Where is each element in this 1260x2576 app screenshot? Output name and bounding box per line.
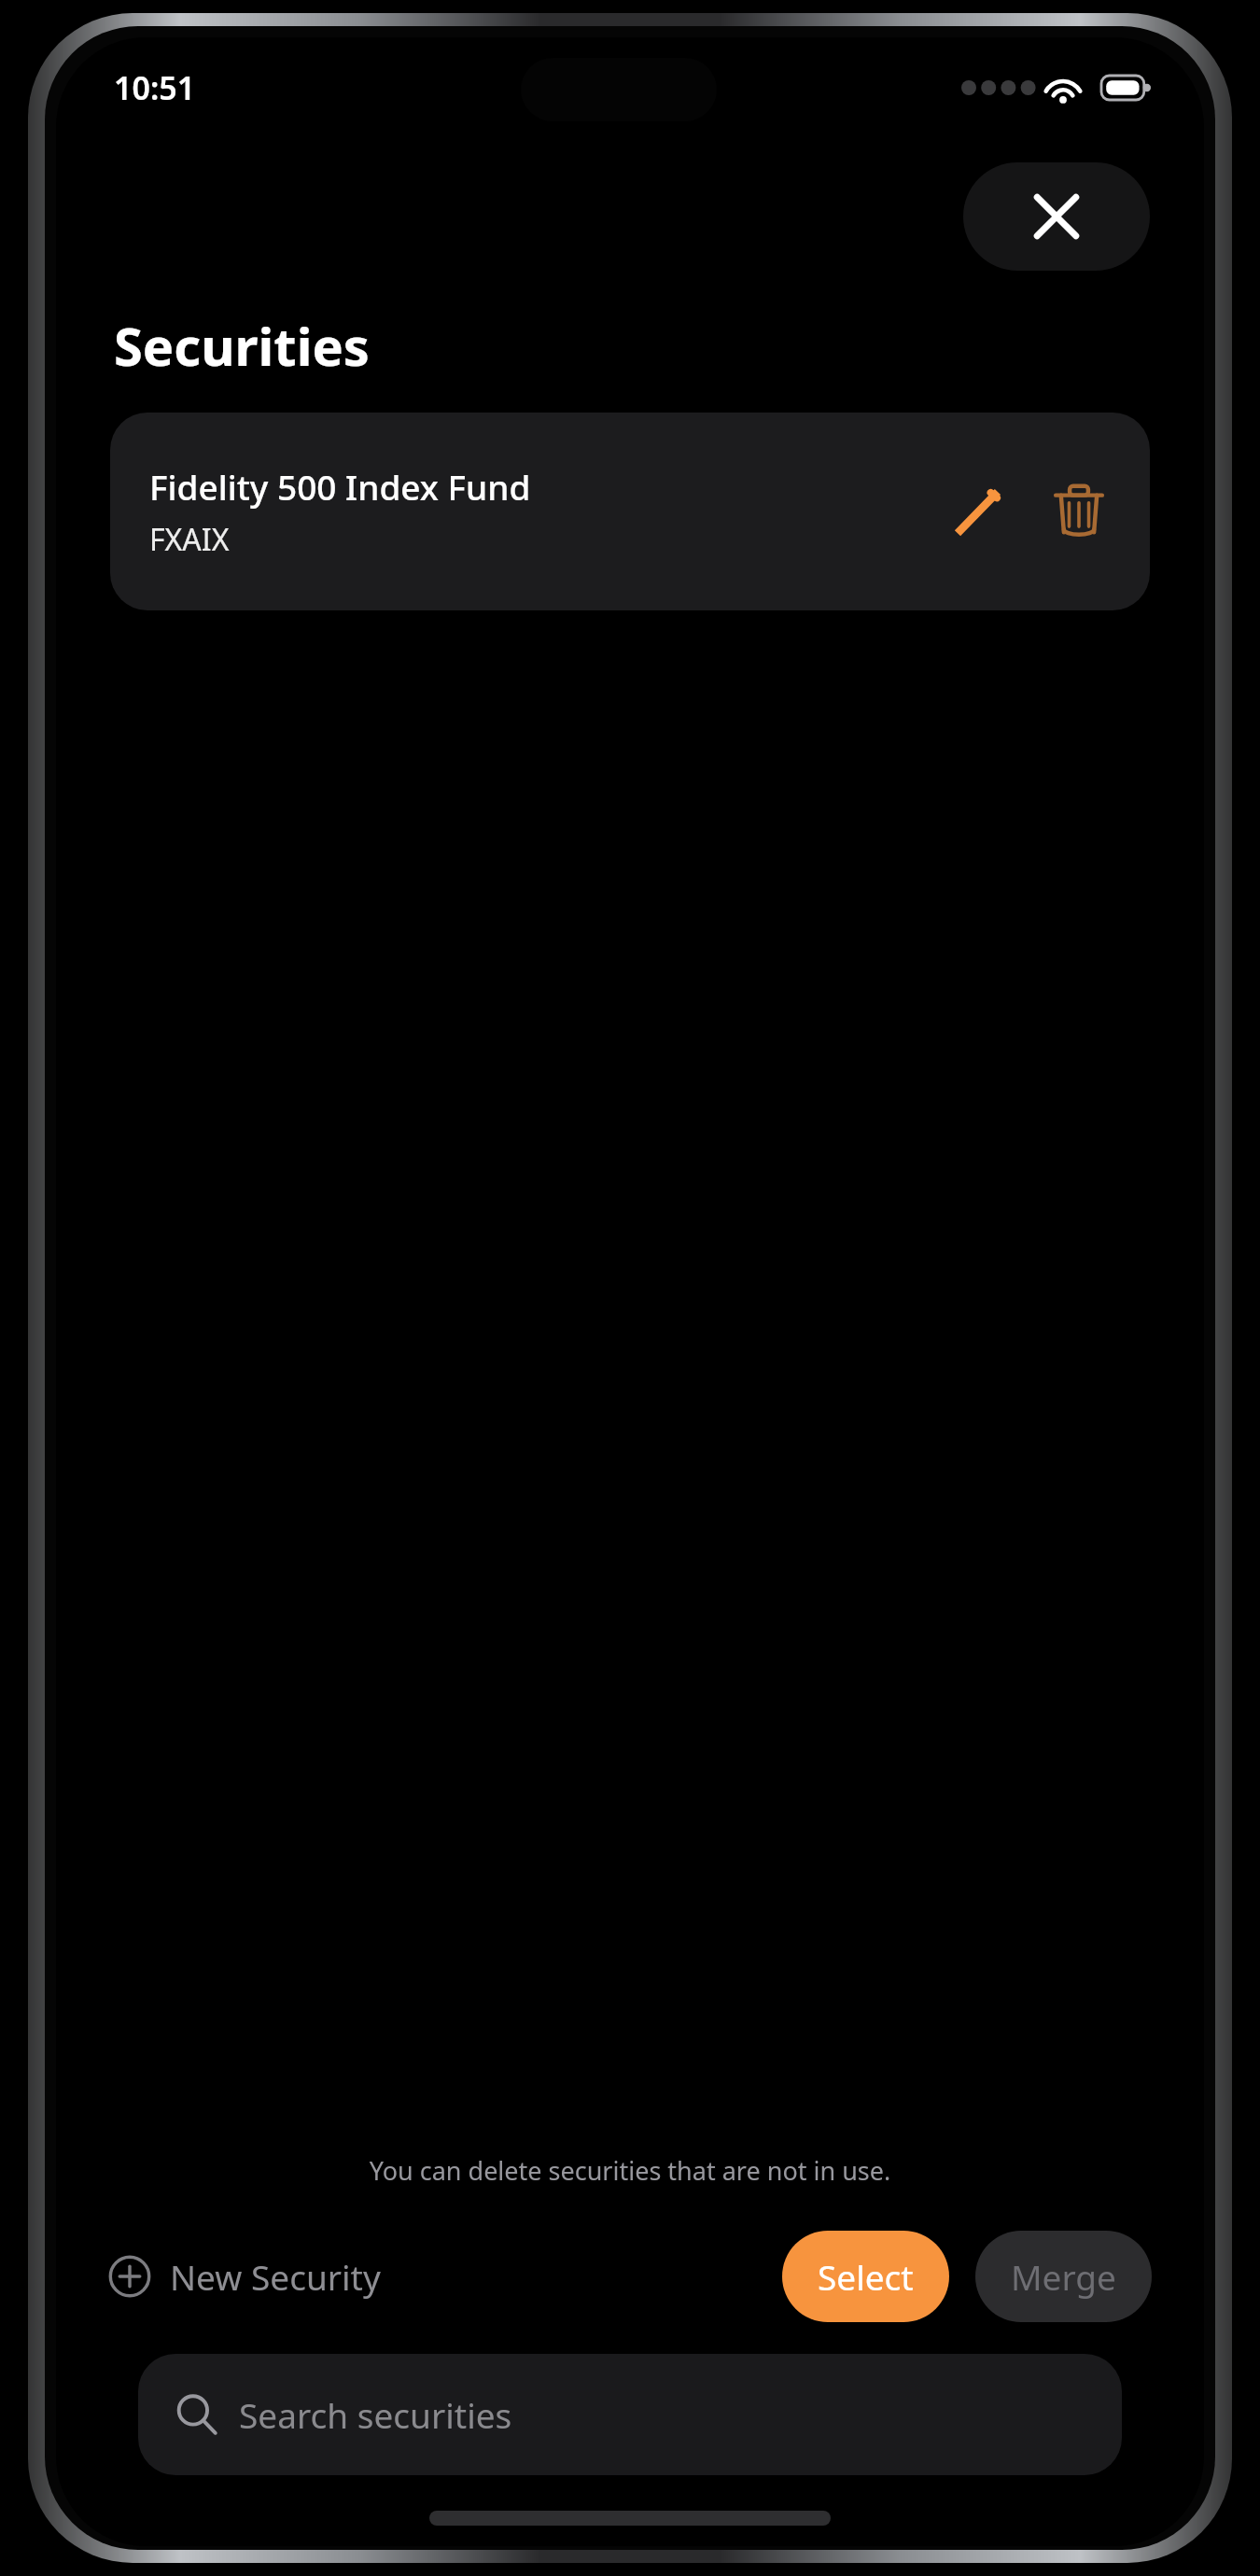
staticText: You can delete securities that are not i… xyxy=(56,2153,1204,2188)
staticText: 10:51 xyxy=(114,66,196,109)
staticText: Select xyxy=(818,2253,914,2300)
button[interactable]: Edit xyxy=(939,472,1017,551)
staticText: Search securities xyxy=(239,2391,512,2438)
button[interactable]: Close xyxy=(963,162,1150,271)
button[interactable]: Delete xyxy=(1040,472,1118,551)
button[interactable]: New Security xyxy=(108,2246,381,2307)
button[interactable]: Merge xyxy=(975,2231,1152,2322)
button[interactable]: Search securities xyxy=(138,2354,1122,2475)
staticText: Securities xyxy=(114,310,370,381)
staticText: FXAIX xyxy=(149,519,230,560)
staticText: Fidelity 500 Index Fund xyxy=(149,463,531,510)
button[interactable]: Fidelity 500 Index Fund xyxy=(110,413,1150,610)
staticText: New Security xyxy=(170,2253,381,2300)
staticText: Merge xyxy=(1011,2253,1116,2300)
button[interactable]: Select xyxy=(782,2231,949,2322)
